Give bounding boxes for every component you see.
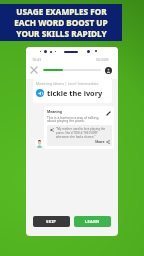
staticText: 5G 84% xyxy=(96,57,109,62)
button[interactable]: Profile xyxy=(105,67,112,74)
staticText: Share xyxy=(95,139,105,144)
button[interactable]: Edit xyxy=(105,110,112,117)
staticText: Meaning xyxy=(47,109,62,114)
button[interactable]: SKIP xyxy=(33,216,70,227)
staticText: "My mother used to love playing the pian… xyxy=(56,127,110,139)
staticText: EACH WORD BOOST UP xyxy=(14,17,108,28)
staticText: Mastering Idioms | Level: Intermediate xyxy=(36,81,99,86)
staticText: YOUR SKILLS RAPIDLY xyxy=(16,28,107,39)
staticText: This is a humorous way of talking about … xyxy=(47,115,105,123)
staticText: SKIP xyxy=(46,219,57,224)
button[interactable]: LEARN xyxy=(74,216,111,227)
button[interactable]: Share xyxy=(49,139,110,144)
button[interactable]: Close xyxy=(29,65,39,75)
button[interactable]: Mastering Idioms | Level: Intermediate xyxy=(33,79,112,103)
staticText: 10:43 xyxy=(32,57,42,62)
staticText: USAGE EXAMPLES FOR xyxy=(16,6,107,17)
staticText: tickle the ivory xyxy=(47,88,103,98)
staticText: LEARN xyxy=(85,219,100,224)
